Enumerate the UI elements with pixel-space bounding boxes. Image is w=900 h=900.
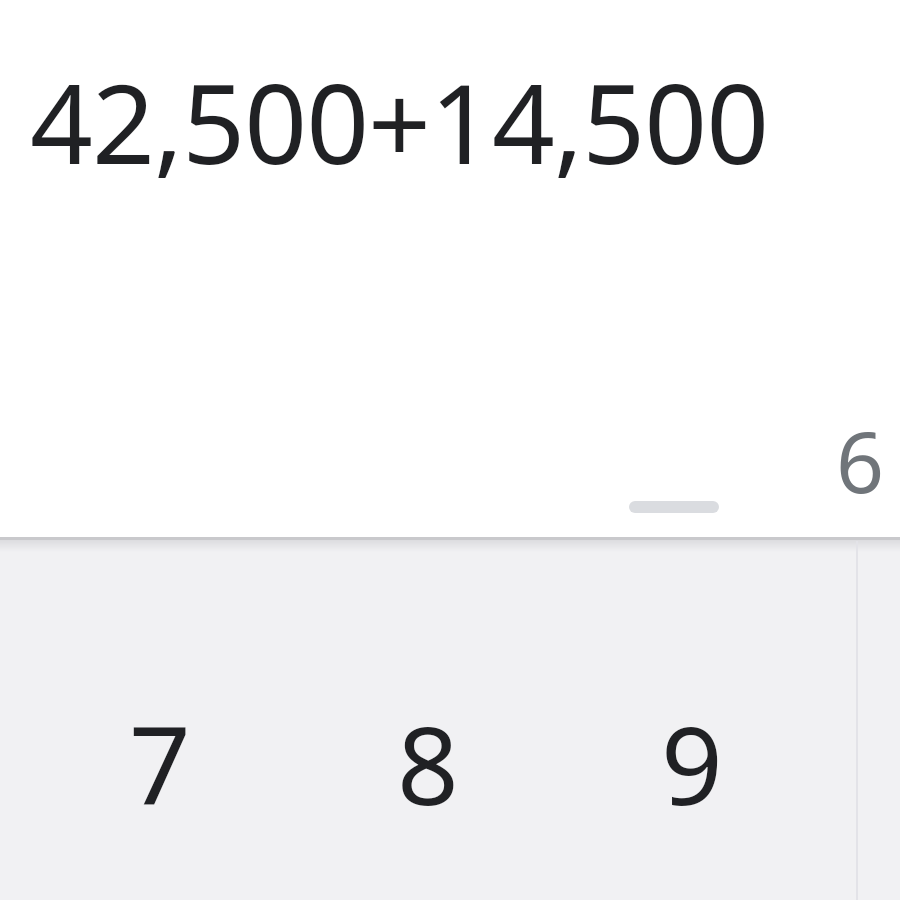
staticText: 9	[661, 690, 723, 810]
button[interactable]: 9	[560, 690, 824, 810]
button[interactable]: 7	[28, 690, 292, 810]
button[interactable]: 6	[0, 300, 900, 460]
button[interactable]: 42,500+14,500	[0, 0, 900, 250]
staticText: 8	[397, 690, 459, 810]
button[interactable]: 8	[296, 690, 560, 810]
button[interactable]: Drag handle	[629, 501, 719, 513]
staticText: 7	[129, 690, 191, 810]
staticText: 6	[836, 403, 885, 517]
staticText: 42,500+14,500	[30, 46, 769, 196]
